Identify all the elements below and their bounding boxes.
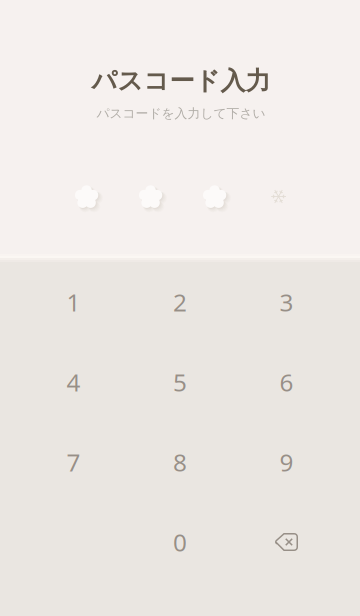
button[interactable]: 1 — [20, 262, 126, 342]
button[interactable]: 5 — [127, 342, 233, 422]
staticText: 0 — [173, 525, 187, 559]
button[interactable]: 4 — [20, 342, 126, 422]
button[interactable]: 8 — [127, 422, 233, 502]
staticText: 3 — [279, 285, 293, 319]
button[interactable]: Delete — [233, 502, 339, 582]
staticText: 5 — [173, 365, 187, 399]
staticText: 9 — [279, 445, 293, 479]
button[interactable]: 2 — [127, 262, 233, 342]
staticText: パスコードを入力して下さい — [96, 105, 265, 121]
button[interactable]: 9 — [233, 422, 339, 502]
staticText: 1 — [66, 285, 80, 319]
staticText: 7 — [66, 445, 80, 479]
staticText: 6 — [279, 365, 293, 399]
button[interactable]: 0 — [127, 502, 233, 582]
staticText: 2 — [173, 285, 187, 319]
button[interactable]: 7 — [20, 422, 126, 502]
staticText: 4 — [66, 365, 80, 399]
staticText: パスコード入力 — [91, 65, 270, 97]
button[interactable]: 6 — [233, 342, 339, 422]
button[interactable]: 3 — [233, 262, 339, 342]
staticText: 8 — [173, 445, 187, 479]
